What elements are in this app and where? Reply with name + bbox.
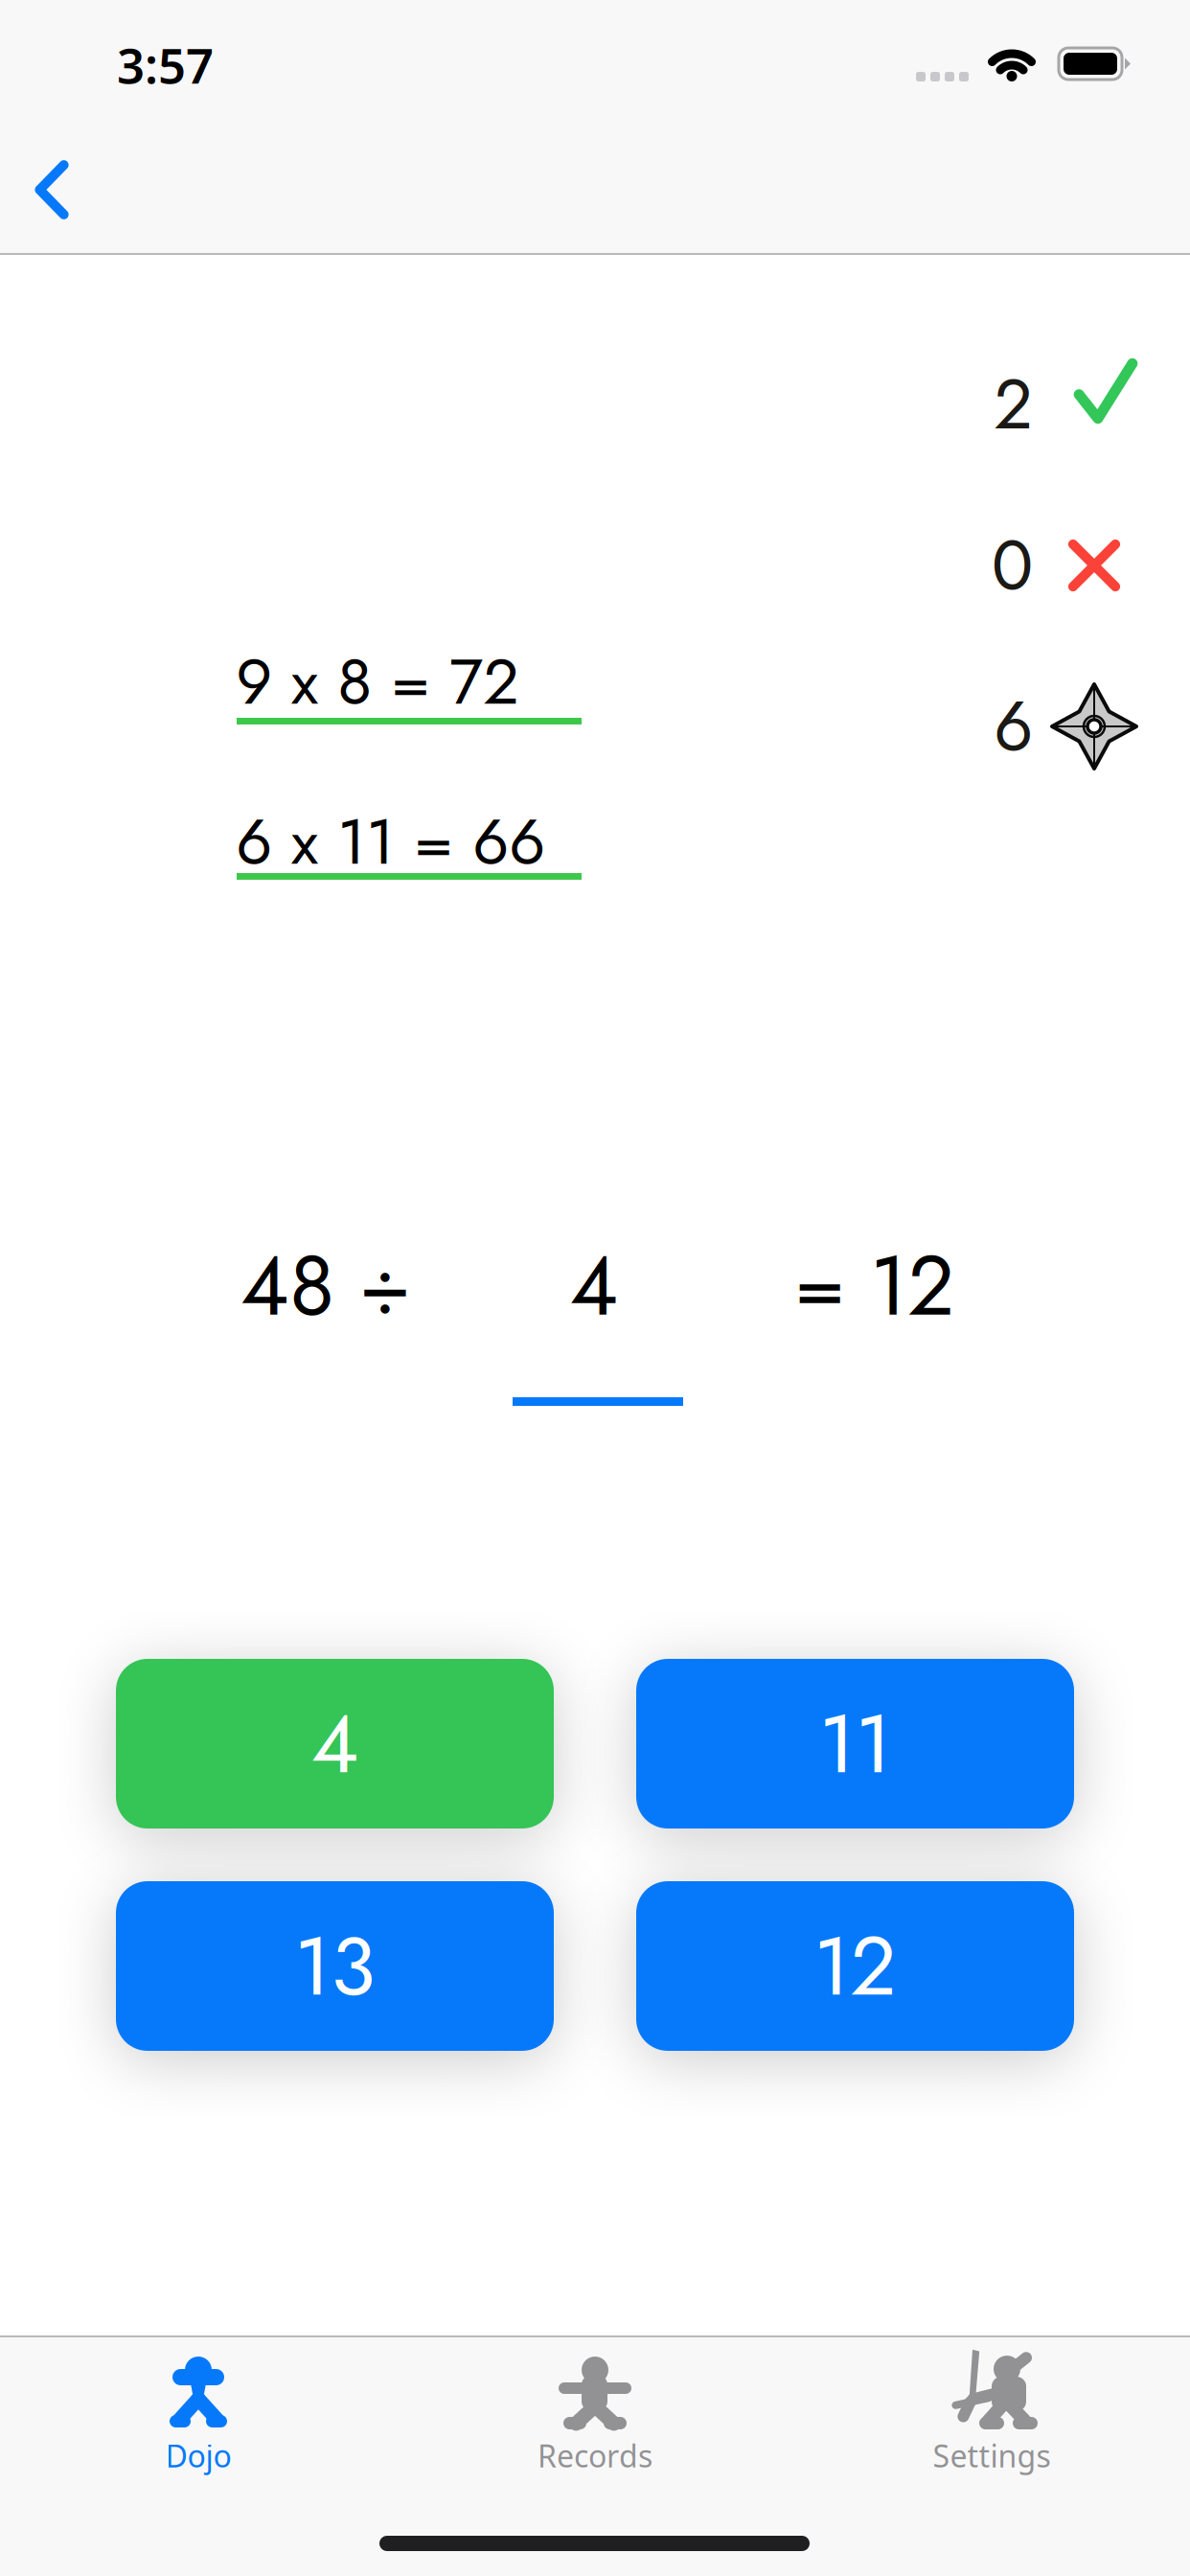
staticText: 0	[992, 516, 1033, 615]
staticText: 13	[294, 1907, 376, 2025]
staticText: 48 ÷	[240, 1226, 411, 1346]
button[interactable]: Settings	[793, 2355, 1190, 2527]
staticText: 12	[813, 1907, 897, 2025]
staticText: Settings	[933, 2435, 1051, 2476]
button[interactable]: 11	[636, 1659, 1074, 1828]
staticText: 11	[819, 1685, 892, 1803]
staticText: 4	[570, 1226, 618, 1346]
button[interactable]: 12	[636, 1881, 1074, 2051]
button[interactable]: 13	[116, 1881, 554, 2051]
staticText: Records	[538, 2435, 652, 2476]
staticText: 6 x 11 = 66	[236, 795, 545, 888]
button[interactable]: 4	[116, 1659, 554, 1828]
button[interactable]: Dojo	[0, 2355, 397, 2527]
staticText: 2	[994, 355, 1033, 454]
staticText: = 12	[794, 1226, 954, 1346]
staticText: 4	[311, 1685, 359, 1803]
button[interactable]: Records	[397, 2355, 793, 2527]
staticText: Dojo	[165, 2435, 231, 2476]
staticText: 6	[994, 677, 1033, 776]
staticText: 3:57	[117, 33, 214, 97]
staticText: 9 x 8 = 72	[236, 635, 519, 728]
button[interactable]	[23, 151, 80, 228]
